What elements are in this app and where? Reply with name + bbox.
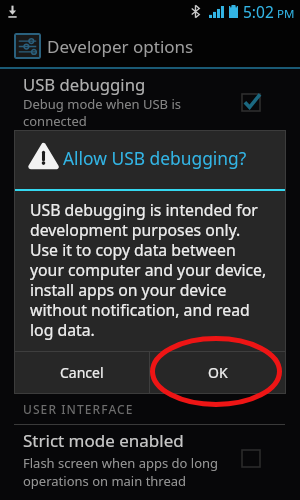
- button[interactable]: USB debugging: [0, 69, 300, 130]
- staticText: OK: [208, 363, 228, 382]
- other: Developer options: [14, 33, 41, 59]
- staticText: Debug mode when USB is connected: [23, 95, 182, 130]
- staticText: Cancel: [60, 363, 104, 382]
- staticText: USB debugging: [23, 73, 146, 96]
- button[interactable]: OK: [150, 352, 286, 393]
- staticText: Flash screen when apps do long operation…: [23, 454, 219, 490]
- other: Download in progress: [6, 5, 19, 18]
- staticText: PM: [277, 6, 295, 22]
- button[interactable]: Strict mode enabled: [0, 428, 300, 492]
- staticText: Developer options: [47, 35, 194, 58]
- button[interactable]: Cancel: [14, 352, 149, 393]
- staticText: 5:02: [243, 1, 274, 22]
- staticText: USER INTERFACE: [23, 401, 134, 417]
- staticText: Strict mode enabled: [23, 429, 184, 452]
- staticText: Allow USB debugging?: [63, 146, 247, 170]
- staticText: USB debugging is intended for developmen…: [30, 199, 267, 340]
